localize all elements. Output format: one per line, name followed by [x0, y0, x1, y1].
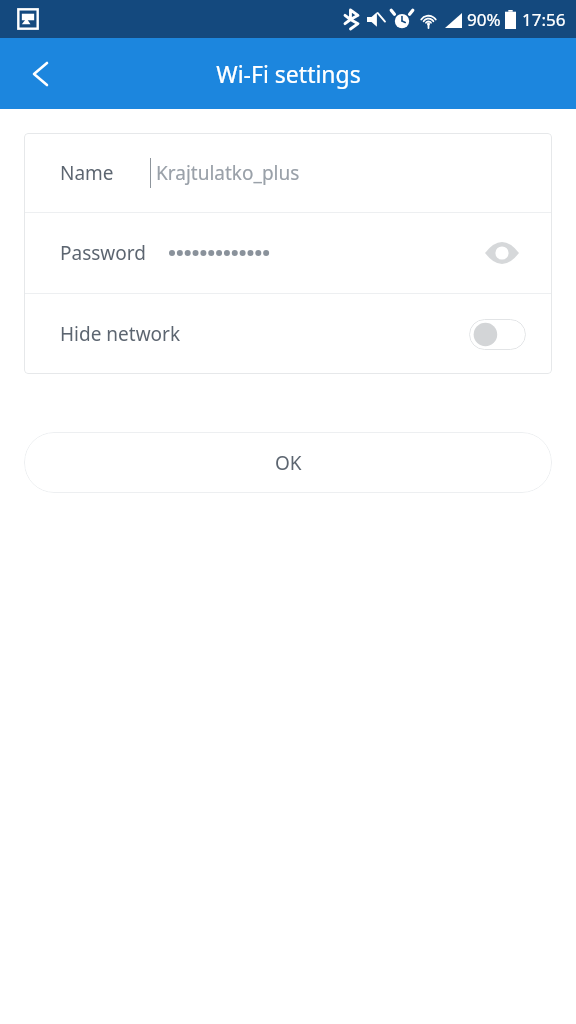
- button[interactable]: Show password: [480, 231, 524, 275]
- staticText: Krajtulatko_plus: [156, 160, 300, 186]
- button[interactable]: Hide network toggle: [469, 319, 526, 350]
- button[interactable]: Password: [24, 213, 552, 293]
- staticText: Password: [60, 240, 146, 266]
- staticText: 90%: [467, 8, 501, 31]
- button[interactable]: OK: [24, 432, 552, 493]
- button[interactable]: Name: [24, 133, 552, 212]
- staticText: Wi-Fi settings: [216, 58, 361, 89]
- button[interactable]: Hide network: [24, 294, 552, 374]
- staticText: OK: [275, 450, 302, 476]
- button[interactable]: Back: [12, 46, 68, 102]
- staticText: Hide network: [60, 321, 181, 347]
- staticText: 17:56: [522, 8, 566, 31]
- staticText: Name: [60, 160, 114, 186]
